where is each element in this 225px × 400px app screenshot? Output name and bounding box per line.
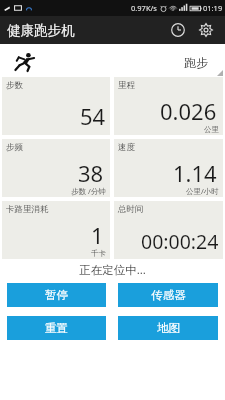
staticText: 千卡 — [91, 249, 106, 258]
staticText: 公里 — [204, 125, 219, 134]
staticText: 1 — [91, 220, 104, 250]
staticText: 步数 /分钟 — [71, 186, 106, 196]
staticText: 步数 — [6, 80, 23, 91]
button[interactable]: 总时间 — [114, 201, 223, 259]
staticText: 总时间 — [118, 204, 144, 215]
button[interactable]: Settings — [193, 17, 219, 43]
staticText: 步频 — [6, 142, 23, 153]
staticText: 公里/小时 — [186, 186, 219, 196]
staticText: 01:19 — [203, 3, 223, 13]
staticText: 38 — [78, 158, 104, 188]
button[interactable]: 里程 — [114, 77, 223, 135]
button[interactable]: 重置 — [7, 316, 106, 340]
button[interactable]: 传感器 — [118, 283, 218, 307]
staticText: 00:00:24 — [141, 228, 219, 255]
staticText: 传感器 — [151, 288, 186, 302]
staticText: 0.026 — [160, 96, 217, 126]
staticText: 0.97K/s — [131, 3, 157, 13]
button[interactable]: 步数 — [2, 77, 110, 135]
button[interactable]: 速度 — [114, 139, 223, 197]
staticText: 卡路里消耗 — [6, 204, 49, 215]
staticText: 地图 — [157, 321, 180, 335]
button[interactable]: History — [165, 17, 191, 43]
button[interactable]: 卡路里消耗 — [2, 201, 110, 259]
staticText: 速度 — [118, 142, 135, 153]
button[interactable]: 跑步 — [167, 47, 225, 77]
staticText: 1.14 — [173, 158, 217, 188]
staticText: 里程 — [118, 80, 135, 91]
staticText: 正在定位中... — [0, 262, 225, 278]
staticText: 健康跑步机 — [7, 22, 75, 39]
staticText: 重置 — [45, 321, 68, 335]
button[interactable]: 暂停 — [7, 283, 106, 307]
staticText: 54 — [80, 101, 106, 131]
staticText: 跑步 — [184, 55, 208, 70]
button[interactable]: 地图 — [118, 316, 218, 340]
staticText: 暂停 — [45, 288, 68, 302]
button[interactable]: 步频 — [2, 139, 110, 197]
